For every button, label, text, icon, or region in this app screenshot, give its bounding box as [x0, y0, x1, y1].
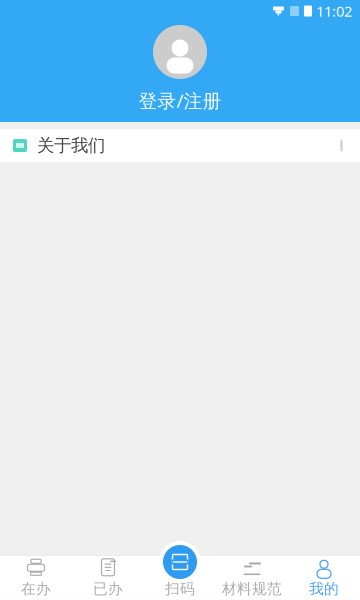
button[interactable]: 在办	[0, 556, 72, 600]
staticText: 11:02	[316, 1, 352, 21]
button[interactable]: 已办	[72, 556, 144, 600]
staticText: 扫码	[165, 580, 195, 598]
button[interactable]: 扫码	[144, 556, 216, 600]
button[interactable]: 材料规范	[216, 556, 288, 600]
button[interactable]: 关于我们	[0, 129, 360, 162]
staticText: 关于我们	[37, 135, 105, 156]
staticText: 材料规范	[222, 580, 282, 598]
staticText: 我的	[309, 580, 339, 598]
button[interactable]: 我的	[288, 556, 360, 600]
staticText: 在办	[21, 580, 51, 598]
staticText: 已办	[93, 580, 123, 598]
button[interactable]: 扫码	[159, 541, 201, 583]
staticText: 登录/注册	[138, 88, 221, 113]
button[interactable]: 登录/注册	[0, 25, 360, 113]
